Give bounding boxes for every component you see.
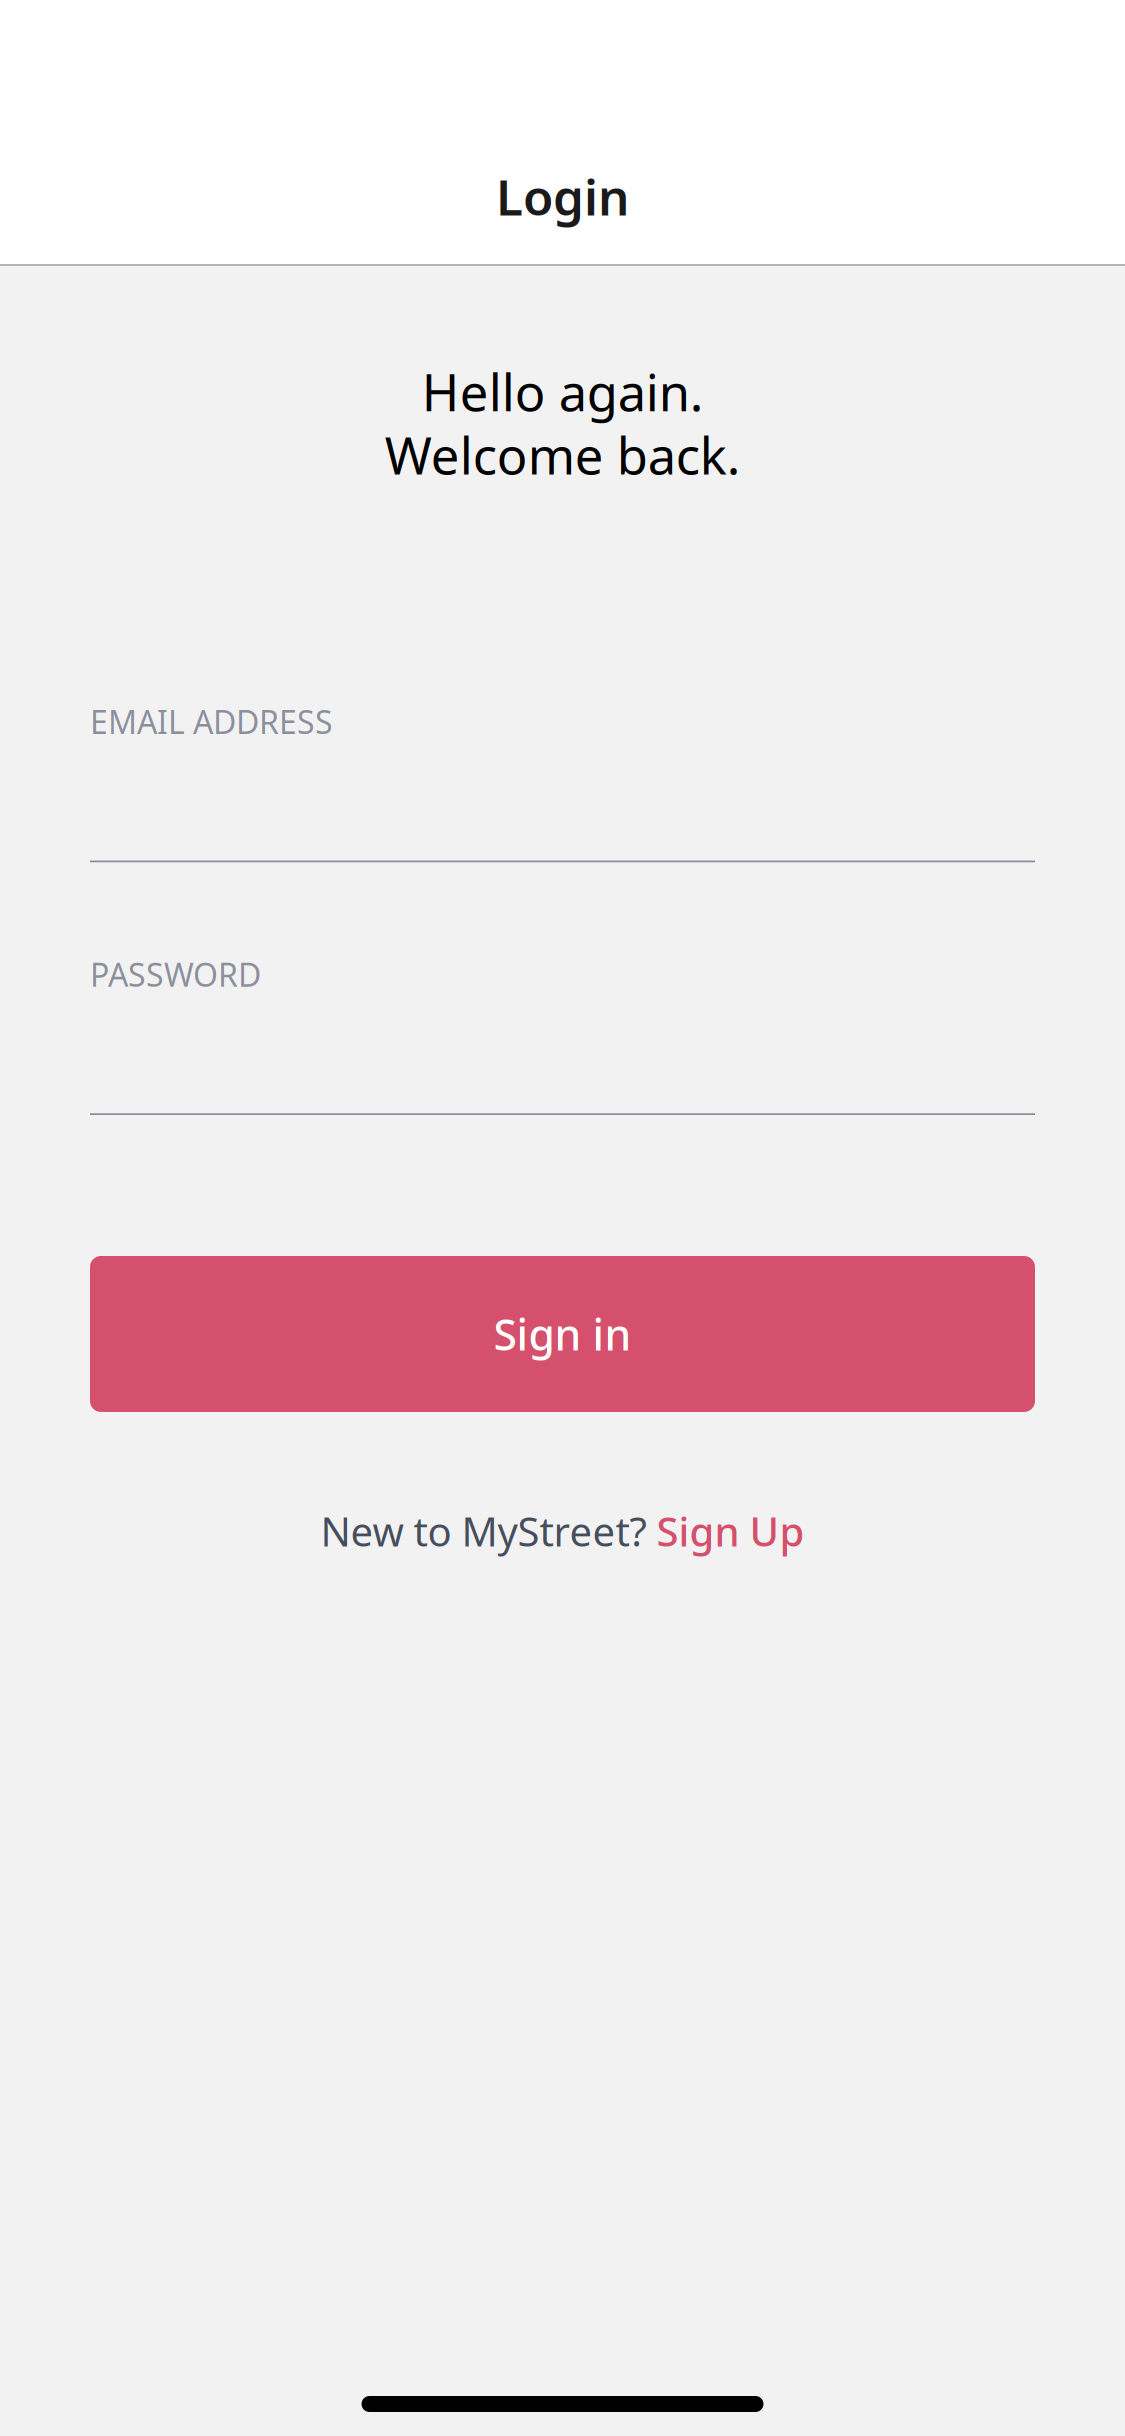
staticText: Sign in [493, 1306, 631, 1362]
button[interactable]: Sign in [90, 1256, 1035, 1412]
button[interactable]: New to MyStreet? [320, 1501, 804, 1561]
staticText: PASSWORD [90, 953, 261, 995]
button[interactable]: PASSWORD [90, 957, 1035, 1115]
staticText: EMAIL ADDRESS [90, 700, 333, 743]
button[interactable]: EMAIL ADDRESS [90, 705, 1035, 862]
staticText: Hello again. Welcome back. [384, 358, 740, 489]
staticText: Login [496, 163, 629, 229]
staticText: New to MyStreet? [320, 1504, 656, 1557]
staticText: Sign Up [656, 1504, 804, 1557]
